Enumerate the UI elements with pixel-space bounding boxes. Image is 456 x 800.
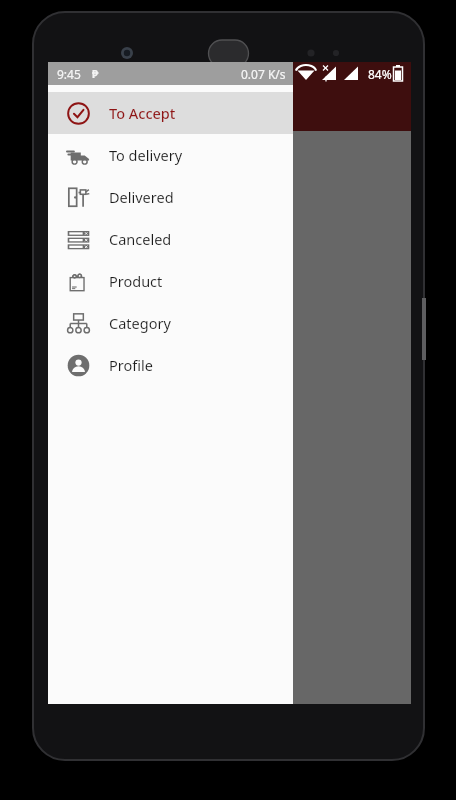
button[interactable]: Profile <box>48 344 293 386</box>
button[interactable]: Category <box>48 302 293 344</box>
staticText: To Accept <box>109 103 176 123</box>
staticText: Product <box>109 271 163 291</box>
button[interactable]: Canceled <box>48 218 293 260</box>
staticText: 0.07 K/s <box>241 66 286 82</box>
staticText: Canceled <box>109 229 172 249</box>
staticText: 9:45 <box>57 66 81 82</box>
button[interactable]: Product <box>48 260 293 302</box>
staticText: Category <box>109 313 171 333</box>
button[interactable]: To Accept <box>48 92 293 134</box>
staticText: ₱ <box>92 66 99 81</box>
button[interactable]: To delivery <box>48 134 293 176</box>
button[interactable]: Delivered <box>48 176 293 218</box>
staticText: To delivery <box>109 145 183 165</box>
staticText: Delivered <box>109 187 174 207</box>
staticText: Profile <box>109 355 153 375</box>
staticText: 84% <box>368 66 392 82</box>
